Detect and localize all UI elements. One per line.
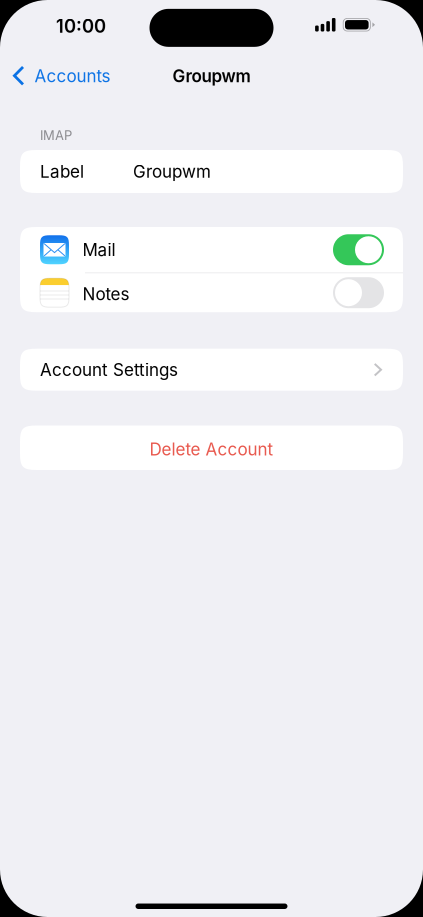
button[interactable]: Mail on: [333, 234, 384, 265]
staticText: 10:00: [56, 15, 106, 37]
staticText: Accounts: [34, 66, 110, 86]
staticText: IMAP: [40, 128, 72, 143]
staticText: Notes: [82, 284, 129, 304]
staticText: Groupwm: [133, 161, 211, 182]
button[interactable]: Account Settings: [20, 349, 403, 391]
button[interactable]: Notes off: [333, 277, 384, 308]
button[interactable]: Accounts: [0, 54, 120, 98]
staticText: Groupwm: [172, 66, 250, 86]
button[interactable]: Notes: [20, 273, 403, 312]
staticText: Account Settings: [40, 359, 178, 380]
staticText: Delete Account: [149, 439, 273, 460]
button[interactable]: Mail: [20, 227, 403, 272]
button[interactable]: Delete Account: [20, 425, 403, 470]
staticText: Mail: [82, 239, 115, 260]
staticText: Label: [40, 161, 84, 182]
